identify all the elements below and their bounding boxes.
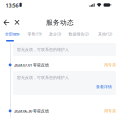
staticText: 用专卖 — [104, 62, 116, 67]
button[interactable]: 全部(89) — [3, 30, 21, 37]
staticText: 用专卖 — [104, 108, 116, 113]
button[interactable]: 数据报告(2) — [67, 30, 90, 37]
staticText: 查看详情 — [96, 84, 112, 89]
button[interactable]: 查看详情 — [96, 84, 112, 89]
button[interactable]: Close — [12, 17, 22, 27]
staticText: 零售(19) — [27, 31, 41, 37]
button[interactable]: 零售(19) — [25, 30, 43, 37]
staticText: 13:56 — [5, 2, 18, 9]
button[interactable]: Back — [1, 17, 11, 27]
staticText: 服务动态 — [46, 18, 74, 27]
button[interactable]: 其他(12) — [96, 30, 114, 37]
staticText: 暂无反馈，可联系您的维护人 — [17, 75, 69, 80]
staticText: 其他(12) — [98, 31, 112, 37]
staticText: 政企(3) — [49, 31, 61, 37]
staticText: 暂无反馈，可联系您的维护人 — [17, 47, 69, 52]
button[interactable]: 政企(3) — [47, 30, 62, 37]
staticText: 2024.06.30 零星反馈 — [14, 108, 49, 114]
staticText: 数据报告(2) — [68, 31, 88, 37]
staticText: 2024.07.01 零星反馈 — [14, 62, 49, 68]
staticText: 全部(89) — [5, 31, 19, 37]
